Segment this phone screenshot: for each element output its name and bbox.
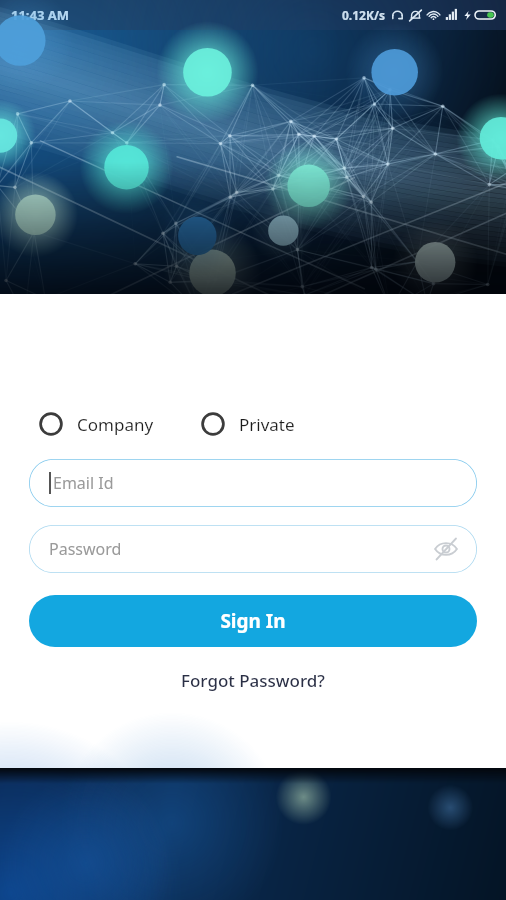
staticText: Company xyxy=(77,413,154,436)
staticText: 11:43 AM xyxy=(11,6,70,24)
button[interactable]: Sign In xyxy=(29,595,477,647)
staticText: Password xyxy=(49,538,122,560)
button[interactable]: Show password xyxy=(431,534,461,564)
button[interactable]: Password xyxy=(29,525,477,573)
staticText: Private xyxy=(239,413,295,436)
staticText: Forgot Password? xyxy=(181,669,325,692)
button[interactable]: Company xyxy=(38,411,154,437)
button[interactable]: Private xyxy=(200,411,295,437)
button[interactable]: Email Id xyxy=(29,459,477,507)
button[interactable]: Forgot Password? xyxy=(169,665,337,696)
staticText: Sign In xyxy=(220,608,286,634)
staticText: 0.12K/s xyxy=(342,7,385,23)
staticText: Email Id xyxy=(53,472,114,494)
